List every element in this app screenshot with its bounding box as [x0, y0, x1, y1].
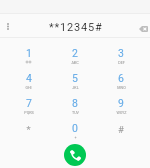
staticText: 7 — [26, 97, 32, 109]
staticText: + — [74, 136, 77, 140]
staticText: 5 — [72, 72, 78, 84]
staticText: WXYZ — [116, 111, 127, 115]
staticText: **12345# — [49, 21, 103, 34]
staticText: TUV — [72, 111, 79, 115]
button[interactable]: 7 — [5, 93, 52, 118]
staticText: 2 — [72, 47, 78, 59]
button[interactable]: 9 — [98, 93, 144, 118]
staticText: PQRS — [24, 111, 34, 115]
button[interactable]: 4 — [5, 68, 52, 93]
button[interactable]: Backspace — [136, 22, 150, 36]
button[interactable]: Call — [64, 144, 86, 166]
staticText: 9 — [118, 97, 124, 109]
button[interactable]: 6 — [98, 68, 144, 93]
button[interactable]: 3 — [98, 43, 144, 68]
button[interactable]: 2 — [52, 43, 98, 68]
staticText: MNO — [117, 86, 126, 90]
staticText: GHI — [25, 86, 32, 90]
button[interactable]: # — [98, 118, 144, 143]
button[interactable]: 8 — [52, 93, 98, 118]
staticText: JKL — [72, 86, 79, 90]
button[interactable]: 1 — [5, 43, 52, 68]
staticText: 0 — [72, 122, 78, 134]
button[interactable]: More options — [1, 19, 15, 33]
staticText: 1 — [26, 47, 32, 59]
staticText: * — [26, 124, 31, 135]
staticText: ABC — [71, 61, 79, 65]
staticText: 4 — [26, 72, 32, 84]
button[interactable]: 0 — [52, 118, 98, 143]
staticText: 6 — [118, 72, 124, 84]
staticText: DEF — [118, 61, 125, 65]
staticText: 8 — [72, 97, 78, 109]
button[interactable]: * — [5, 118, 52, 143]
button[interactable]: 5 — [52, 68, 98, 93]
staticText: 3 — [118, 47, 124, 59]
staticText: # — [118, 124, 124, 135]
